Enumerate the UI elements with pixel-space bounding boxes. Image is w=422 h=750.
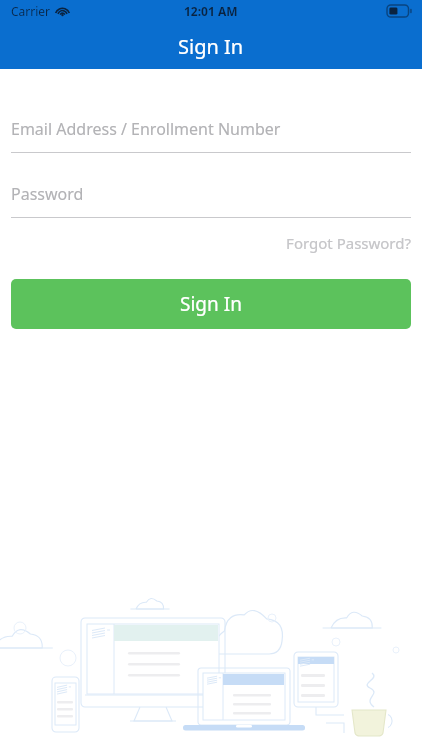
staticText: Sign In (178, 33, 244, 60)
staticText: 12:01 AM (184, 3, 238, 19)
button[interactable]: Sign In (11, 279, 411, 329)
button[interactable]: Forgot Password? (286, 230, 411, 256)
staticText: Email Address / Enrollment Number (11, 118, 281, 140)
staticText: Password (11, 183, 84, 205)
button[interactable]: Password (11, 179, 411, 218)
button[interactable]: Email Address / Enrollment Number (11, 114, 411, 153)
staticText: Sign In (180, 291, 242, 317)
staticText: Carrier (11, 3, 51, 19)
staticText: Forgot Password? (286, 233, 411, 253)
